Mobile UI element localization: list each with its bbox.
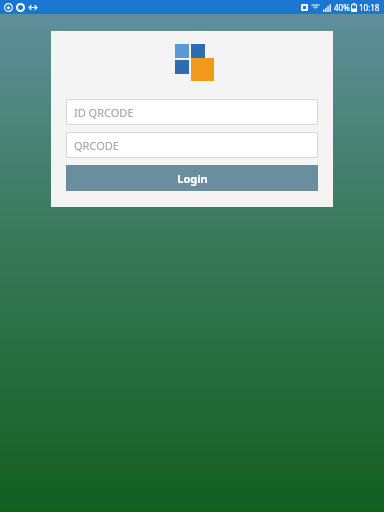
staticText: QRCODE: [74, 138, 119, 153]
staticText: 10:18: [359, 2, 380, 13]
staticText: ID QRCODE: [74, 105, 134, 120]
staticText: 40%: [334, 2, 350, 13]
button[interactable]: Login: [66, 165, 318, 191]
button[interactable]: QRCODE: [66, 132, 318, 158]
button[interactable]: ID QRCODE: [66, 99, 318, 125]
staticText: Login: [177, 171, 208, 186]
